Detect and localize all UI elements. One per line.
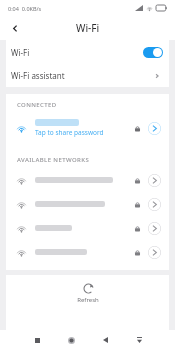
button[interactable]: Network details [148, 222, 161, 235]
button[interactable]: Network details [148, 122, 161, 135]
button[interactable]: Refresh [69, 281, 107, 306]
button[interactable]: Network details [6, 192, 169, 216]
button[interactable]: Back [6, 19, 24, 37]
staticText: AVAILABLE NETWORKS [17, 156, 90, 164]
button[interactable]: Wi-Fi toggle [143, 47, 163, 58]
staticText: Refresh [77, 296, 99, 304]
button[interactable]: Home [62, 331, 80, 349]
button[interactable]: Network details [148, 198, 161, 211]
button[interactable]: Hide keyboard [130, 331, 148, 349]
button[interactable]: Network details [148, 174, 161, 187]
staticText: 0:04 0.0KB/s [8, 5, 42, 12]
button[interactable]: Network details [6, 216, 169, 240]
staticText: Tap to share password [35, 128, 104, 137]
button[interactable]: Back [96, 331, 114, 349]
button[interactable]: Recent apps [28, 331, 46, 349]
staticText: Wi-Fi [11, 47, 30, 58]
staticText: Wi-Fi [76, 21, 100, 35]
button[interactable]: Network details [148, 246, 161, 259]
staticText: Wi-Fi assistant [11, 70, 65, 81]
button[interactable]: Network details [6, 240, 169, 264]
button[interactable]: Wi-Fi [6, 40, 169, 64]
staticText: CONNECTED [17, 101, 57, 109]
button[interactable]: Network details [6, 168, 169, 192]
button[interactable]: Tap to share password [6, 113, 169, 143]
button[interactable]: Wi-Fi assistant [6, 64, 169, 87]
